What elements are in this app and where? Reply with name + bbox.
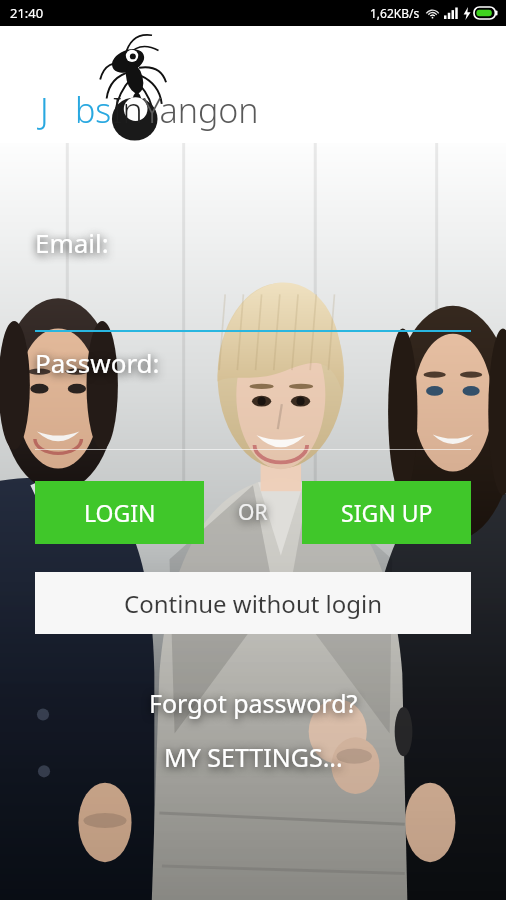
- staticText: Yangon: [143, 87, 259, 133]
- button[interactable]: Continue without login: [35, 572, 471, 634]
- staticText: LOGIN: [84, 497, 156, 528]
- button[interactable]: LOGIN: [35, 481, 204, 544]
- staticText: Continue without login: [124, 587, 383, 620]
- button[interactable]: [35, 292, 471, 332]
- staticText: bs: [75, 87, 112, 133]
- button[interactable]: [35, 410, 471, 450]
- staticText: Email:: [35, 225, 109, 260]
- staticText: OR: [238, 498, 268, 527]
- button[interactable]: SIGN UP: [302, 481, 471, 544]
- staticText: SIGN UP: [341, 497, 433, 528]
- staticText: Forgot password?: [149, 686, 358, 720]
- button[interactable]: Forgot password?: [0, 682, 506, 724]
- staticText: 21:40: [10, 4, 44, 22]
- staticText: 1,62KB/s: [370, 5, 420, 21]
- staticText: MY SETTINGS...: [164, 740, 343, 774]
- button[interactable]: MY SETTINGS...: [0, 736, 506, 778]
- staticText: In: [112, 87, 143, 133]
- staticText: J: [40, 87, 49, 133]
- staticText: Password:: [35, 345, 160, 380]
